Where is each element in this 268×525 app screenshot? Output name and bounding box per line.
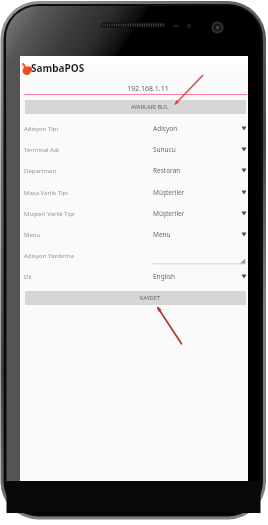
staticText: Restoran	[153, 166, 181, 175]
staticText: Terminal Adı	[24, 146, 60, 154]
staticText: Müşteri Varlık Tipi	[24, 210, 75, 218]
staticText: Sunucu	[153, 145, 176, 154]
button[interactable]: Menu	[20, 224, 248, 245]
staticText: Dil	[24, 273, 32, 281]
staticText: AYARLARI BUL	[131, 103, 169, 111]
staticText: Masa Varlık Tipi	[24, 189, 68, 197]
staticText: SambaPOS	[31, 61, 85, 75]
button[interactable]: Masa Varlık Tipi	[20, 182, 248, 203]
button[interactable]: Adisyon Tipi	[20, 118, 248, 139]
button[interactable]: Departman	[20, 160, 248, 181]
staticText: Adisyon	[153, 124, 178, 133]
button[interactable]: Dil	[20, 266, 248, 287]
button[interactable]: Adisyon Yazdırma	[20, 245, 248, 266]
button[interactable]: Müşteri Varlık Tipi	[20, 203, 248, 224]
button[interactable]: Terminal Adı	[20, 139, 248, 160]
staticText: 192.168.1.11	[127, 84, 169, 94]
staticText: KAYDET	[140, 294, 161, 302]
staticText: Adisyon Tipi	[24, 125, 59, 133]
staticText: Müşteriler	[153, 188, 185, 197]
staticText: English	[153, 272, 176, 281]
staticText: Menu	[153, 230, 171, 239]
staticText: Departman	[24, 167, 57, 175]
staticText: Müşteriler	[153, 209, 185, 218]
staticText: Menu	[24, 231, 41, 239]
staticText: Adisyon Yazdırma	[24, 252, 74, 260]
button[interactable]: AYARLARI BUL	[25, 100, 246, 114]
button[interactable]: KAYDET	[25, 291, 246, 305]
